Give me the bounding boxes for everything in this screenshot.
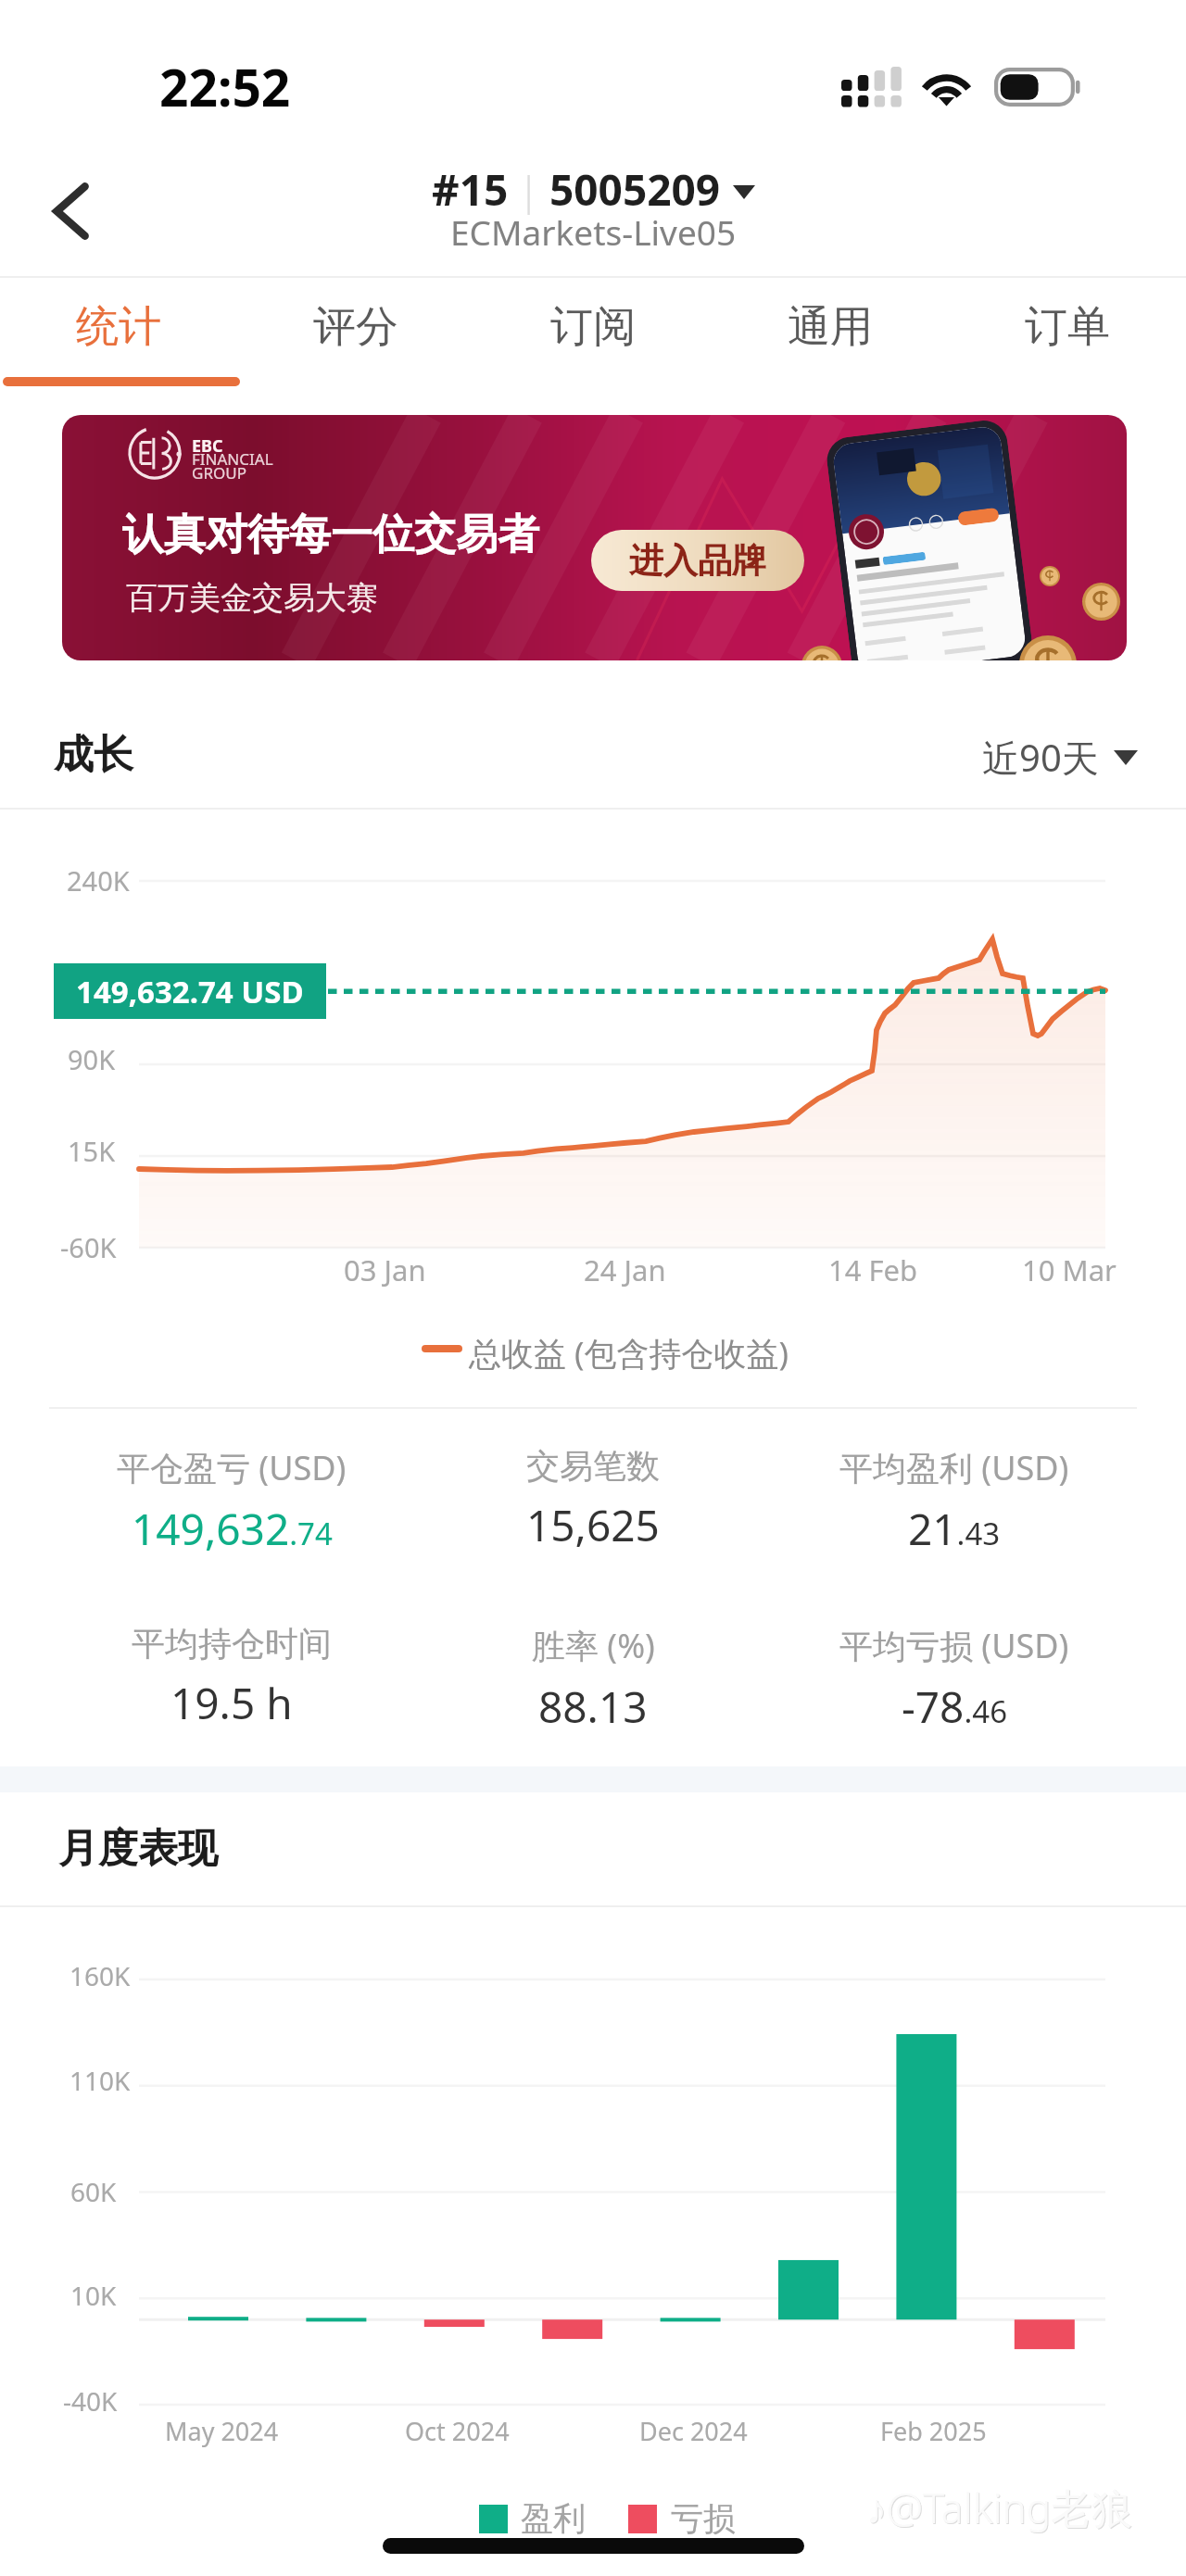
staticText: 19.5 h — [170, 1674, 293, 1732]
staticText: 进入品牌 — [629, 539, 766, 583]
button[interactable]: Back — [26, 167, 115, 256]
staticText: 03 Jan — [344, 1250, 426, 1289]
staticText: 160K — [69, 1958, 131, 1993]
staticText: 24 Jan — [584, 1250, 666, 1289]
staticText: 成长 — [54, 730, 133, 780]
button[interactable]: 评分 — [237, 278, 474, 380]
button[interactable]: 近90天 — [982, 732, 1138, 783]
staticText: 通用 — [788, 300, 873, 354]
staticText: GROUP — [192, 462, 246, 484]
staticText: 240K — [67, 862, 130, 898]
staticText: 盈利 — [521, 2498, 586, 2539]
staticText: 149,632.74 — [132, 1500, 333, 1558]
staticText: Feb 2025 — [880, 2414, 987, 2448]
button[interactable]: 订单 — [949, 278, 1186, 380]
staticText: 21.43 — [908, 1500, 1001, 1558]
staticText: May 2024 — [165, 2414, 279, 2448]
staticText: #15 | 5005209 — [432, 160, 721, 219]
staticText: 平均持仓时间 — [132, 1623, 332, 1665]
button[interactable]: 进入品牌 — [591, 530, 804, 591]
staticText: 15,625 — [526, 1496, 660, 1554]
staticText: -40K — [63, 2383, 118, 2419]
staticText: ECMarkets-Live05 — [450, 208, 737, 255]
staticText: 149,632.74 USD — [76, 971, 304, 1012]
staticText: 订阅 — [550, 300, 636, 354]
staticText: 交易笔数 — [526, 1445, 660, 1487]
staticText: 60K — [70, 2174, 117, 2209]
staticText: ♪@Talking老狼 — [867, 2481, 1134, 2536]
staticText: 订单 — [1025, 300, 1110, 354]
staticText: -60K — [60, 1229, 117, 1265]
staticText: 14 Feb — [828, 1250, 918, 1289]
staticText: 百万美金交易大赛 — [126, 578, 378, 618]
staticText: 88.13 — [538, 1678, 648, 1736]
button[interactable]: EBC — [62, 415, 1127, 660]
button[interactable]: 统计 — [0, 278, 237, 380]
staticText: 22:52 — [159, 52, 291, 121]
staticText: 认真对待每一位交易者 — [122, 509, 539, 561]
staticText: Oct 2024 — [405, 2414, 510, 2448]
staticText: 统计 — [76, 300, 161, 354]
staticText: 月度表现 — [58, 1824, 218, 1874]
staticText: ♪@Talking老狼 — [866, 2480, 1133, 2535]
button[interactable]: #15 | 5005209 — [432, 160, 755, 265]
staticText: 平均亏损 (USD) — [839, 1623, 1069, 1668]
staticText: 评分 — [313, 300, 398, 354]
staticText: 亏损 — [671, 2498, 736, 2539]
staticText: 10K — [70, 2278, 117, 2313]
staticText: 近90天 — [982, 732, 1099, 783]
staticText: 110K — [69, 2063, 131, 2098]
staticText: Dec 2024 — [639, 2414, 748, 2448]
staticText: -78.46 — [902, 1678, 1008, 1736]
staticText: 10 Mar — [1022, 1250, 1117, 1289]
staticText: 15K — [68, 1133, 116, 1169]
staticText: 平均盈利 (USD) — [839, 1445, 1069, 1490]
staticText: EBC — [192, 434, 223, 458]
staticText: 平仓盈亏 (USD) — [117, 1445, 347, 1490]
button[interactable]: 通用 — [712, 278, 949, 380]
button[interactable]: 订阅 — [474, 278, 712, 380]
staticText: 总收益 (包含持仓收益) — [469, 1331, 789, 1376]
staticText: 胜率 (%) — [532, 1623, 655, 1668]
staticText: 90K — [68, 1041, 116, 1077]
staticText: FINANCIAL — [192, 448, 273, 470]
